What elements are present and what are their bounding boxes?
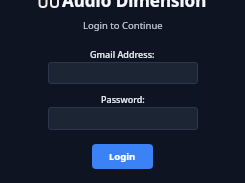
staticText: Gmail Address: [90,48,155,60]
button[interactable] [48,107,198,130]
button[interactable]: Login [92,144,153,169]
staticText: Password: [101,93,145,105]
button[interactable] [48,62,198,84]
staticText: Login to Continue [83,19,163,32]
staticText: Audio Dimension [62,0,207,12]
staticText: Login [109,150,136,163]
